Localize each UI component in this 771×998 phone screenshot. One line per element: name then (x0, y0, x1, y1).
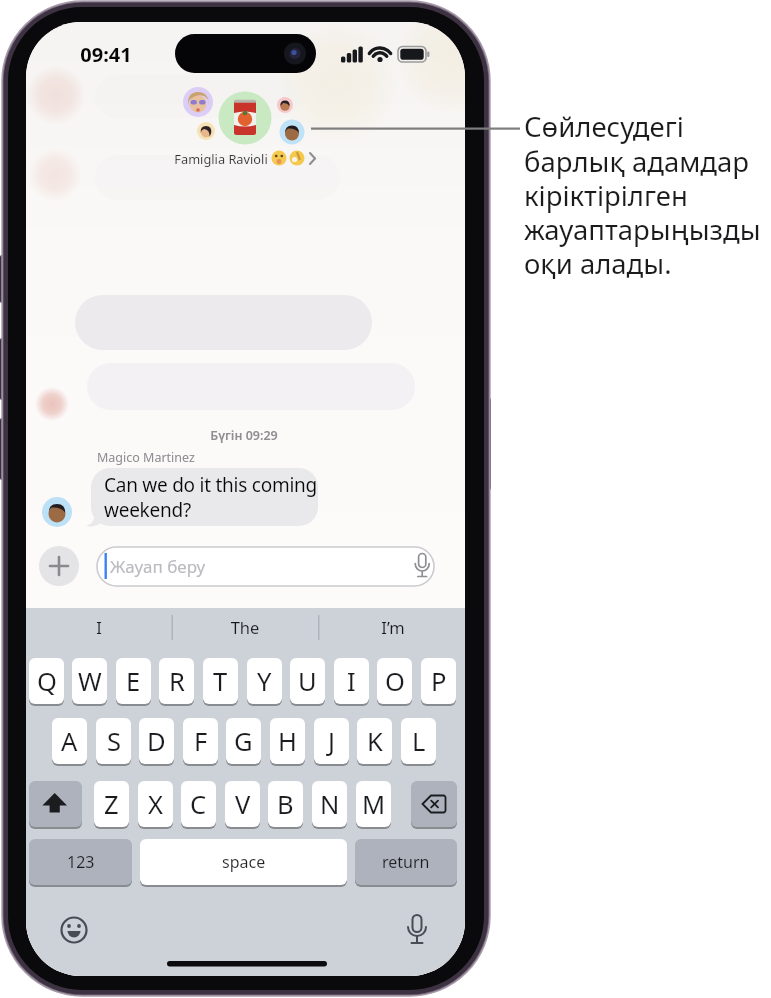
staticText: 09:41 (71, 41, 141, 79)
button[interactable]: W (72, 658, 107, 704)
staticText: H (278, 724, 297, 759)
button[interactable]: The (195, 616, 295, 647)
button[interactable]: K (357, 718, 392, 764)
staticText: L (412, 724, 426, 759)
button[interactable]: E (116, 658, 151, 704)
staticText: U (298, 664, 317, 699)
staticText: J (328, 724, 335, 759)
staticText: G (234, 724, 253, 759)
button[interactable] (39, 546, 79, 586)
staticText: K (367, 724, 383, 759)
button[interactable]: O (377, 658, 412, 704)
staticText: Жауап беру (110, 555, 260, 587)
staticText: E (126, 664, 141, 699)
staticText: D (147, 724, 166, 759)
staticText: I (347, 664, 356, 699)
staticText: T (213, 664, 228, 699)
button[interactable]: F (183, 718, 218, 764)
button[interactable]: U (290, 658, 325, 704)
button[interactable]: space (140, 839, 347, 885)
staticText: F (194, 724, 208, 759)
button[interactable]: I (49, 616, 149, 647)
button[interactable]: Y (247, 658, 282, 704)
staticText: V (235, 787, 251, 822)
staticText: return (382, 851, 430, 873)
staticText: P (431, 664, 447, 699)
staticText: Z (104, 787, 119, 822)
staticText: Magico Martinez (97, 449, 247, 473)
button[interactable]: A (52, 718, 87, 764)
staticText: Бүгін 09:29 (184, 427, 304, 451)
button[interactable]: S (96, 718, 131, 764)
staticText: Y (257, 664, 272, 699)
button[interactable] (29, 781, 82, 827)
button[interactable] (411, 781, 457, 827)
staticText: C (190, 787, 207, 822)
button[interactable] (176, 85, 326, 169)
staticText: 123 (67, 851, 95, 873)
button[interactable]: G (226, 718, 261, 764)
staticText: R (169, 664, 185, 699)
staticText: space (222, 851, 266, 873)
button[interactable]: B (268, 781, 303, 827)
button[interactable]: V (225, 781, 260, 827)
staticText: Can we do it this coming (104, 472, 384, 508)
button[interactable]: X (138, 781, 173, 827)
button[interactable]: J (314, 718, 349, 764)
button[interactable] (401, 914, 433, 946)
button[interactable]: Q (29, 658, 64, 704)
staticText: W (78, 664, 102, 699)
button[interactable]: M (356, 781, 391, 827)
staticText: weekend? (104, 497, 384, 533)
button[interactable]: H (270, 718, 305, 764)
button[interactable] (58, 914, 90, 946)
button[interactable]: T (203, 658, 238, 704)
staticText: Сөйлесудегі барлық адамдар кіріктірілген… (524, 108, 761, 282)
button[interactable]: return (355, 839, 457, 885)
button[interactable]: C (181, 781, 216, 827)
staticText: N (320, 787, 340, 822)
button[interactable] (91, 468, 318, 526)
staticText: Q (37, 664, 57, 699)
staticText: O (385, 664, 405, 699)
staticText: S (107, 724, 121, 759)
button[interactable]: I’m (343, 616, 443, 647)
staticText: X (148, 787, 163, 822)
staticText: M (362, 787, 386, 822)
button[interactable]: D (139, 718, 174, 764)
button[interactable]: Z (94, 781, 129, 827)
button[interactable]: N (312, 781, 347, 827)
button[interactable]: 123 (29, 839, 132, 885)
button[interactable]: L (401, 718, 436, 764)
staticText: A (61, 724, 78, 759)
button[interactable]: I (334, 658, 369, 704)
button[interactable]: R (159, 658, 194, 704)
button[interactable]: P (421, 658, 456, 704)
staticText: Famiglia Ravioli (156, 150, 286, 174)
staticText: B (277, 787, 294, 822)
button[interactable] (97, 547, 434, 586)
